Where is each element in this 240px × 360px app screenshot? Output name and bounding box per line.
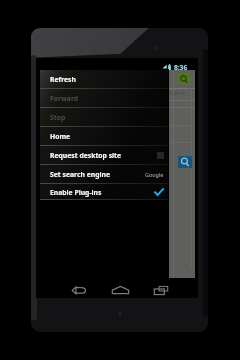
button[interactable]: Forward <box>40 89 168 108</box>
staticText: Request desktop site <box>50 151 122 160</box>
button[interactable]: Recent apps <box>150 282 172 298</box>
button[interactable]: Stop <box>40 108 168 127</box>
staticText: Enable Plug-ins <box>50 188 102 197</box>
staticText: Stop <box>50 113 66 122</box>
button[interactable]: Request desktop site <box>40 146 168 165</box>
staticText: Google <box>145 171 164 178</box>
button[interactable]: Refresh <box>40 70 168 89</box>
button[interactable]: Set search engine <box>40 165 168 184</box>
staticText: 8:36 <box>174 63 188 70</box>
staticText: Home <box>50 132 71 141</box>
button[interactable]: Back <box>68 282 90 298</box>
staticText: Sign in <box>169 90 185 97</box>
staticText: Forward <box>50 94 79 103</box>
staticText: Set search engine <box>50 170 110 179</box>
button[interactable]: Home <box>109 282 131 298</box>
staticText: Refresh <box>50 75 76 84</box>
button[interactable]: Enable Plug-ins <box>40 184 168 200</box>
button[interactable]: Home <box>40 127 168 146</box>
